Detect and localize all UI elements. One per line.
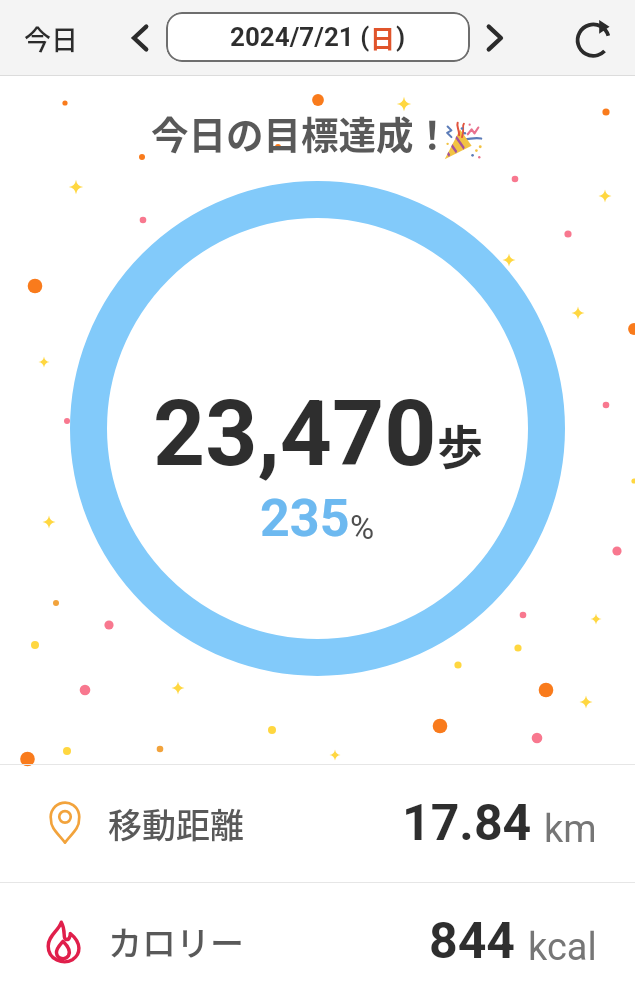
staticText: 23,470: [153, 381, 437, 488]
staticText: 今日: [24, 19, 78, 58]
staticText: kcal: [528, 925, 597, 970]
staticText: 今日の目標達成！: [151, 105, 451, 159]
staticText: 歩: [437, 411, 483, 478]
staticText: 17.84: [402, 794, 532, 853]
staticText: 日: [370, 19, 396, 55]
staticText: 235: [260, 488, 350, 549]
button[interactable]: Previous day: [116, 14, 164, 62]
staticText: 移動距離: [108, 799, 244, 848]
button[interactable]: 2024/7/21 (: [166, 12, 470, 62]
button[interactable]: Refresh: [567, 11, 621, 65]
staticText: ): [396, 22, 406, 52]
button[interactable]: Next day: [471, 14, 519, 62]
button[interactable]: 移動距離: [0, 765, 635, 882]
button[interactable]: 今日: [9, 11, 93, 65]
button[interactable]: カロリー: [0, 883, 635, 1000]
staticText: 844: [429, 912, 516, 971]
staticText: カロリー: [108, 917, 244, 966]
staticText: %: [350, 508, 375, 547]
staticText: 2024/7/21 (: [230, 22, 370, 52]
staticText: km: [544, 807, 597, 852]
